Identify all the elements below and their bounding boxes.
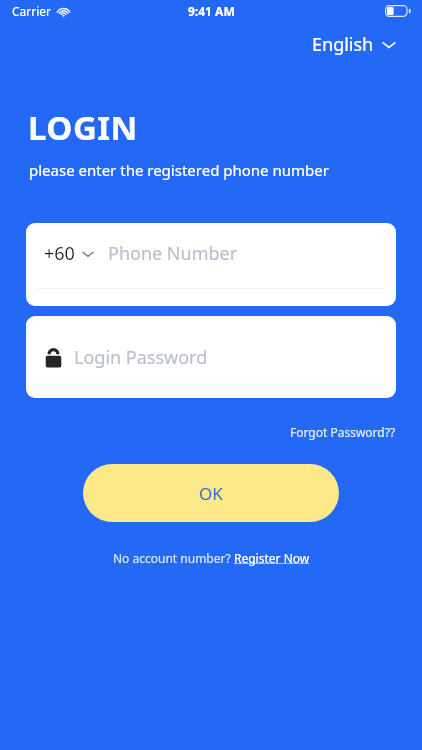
staticText: Carrier bbox=[12, 3, 52, 19]
staticText: Phone Number bbox=[108, 241, 238, 266]
button[interactable]: Forgot Password?? bbox=[286, 421, 400, 443]
staticText: Register Now bbox=[234, 550, 310, 566]
button[interactable]: Login Password bbox=[26, 316, 396, 398]
button[interactable]: Phone Number bbox=[108, 230, 396, 276]
staticText: Forgot Password?? bbox=[290, 424, 396, 440]
staticText: 9:41 AM bbox=[188, 3, 235, 19]
button[interactable]: English bbox=[308, 28, 400, 61]
button[interactable]: OK bbox=[83, 464, 339, 522]
staticText: English bbox=[312, 32, 374, 57]
staticText: No account number? bbox=[113, 550, 234, 566]
button[interactable]: Register Now bbox=[234, 550, 310, 566]
staticText: Login Password bbox=[74, 345, 208, 370]
button[interactable]: +60 bbox=[38, 235, 100, 272]
staticText: +60 bbox=[44, 241, 75, 266]
staticText: please enter the registered phone number bbox=[29, 160, 329, 180]
staticText: OK bbox=[199, 482, 223, 505]
staticText: LOGIN bbox=[28, 105, 138, 150]
